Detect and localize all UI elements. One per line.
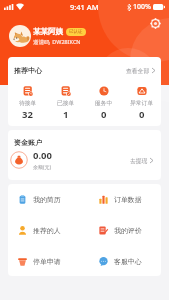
button[interactable]: 我的简历 xyxy=(8,184,84,215)
staticText: 去提现 xyxy=(130,157,148,164)
button[interactable]: 推荐的人 xyxy=(8,215,84,246)
staticText: 停单申请 xyxy=(33,257,61,266)
staticText: 已接单 xyxy=(57,99,75,106)
button[interactable]: 查看全部 xyxy=(126,67,155,74)
staticText: 某某阿姨 xyxy=(33,27,63,36)
staticText: 已认证 xyxy=(69,29,83,35)
staticText: 客服中心 xyxy=(114,257,142,266)
staticText: 推荐的人 xyxy=(33,226,61,235)
button[interactable]: 停单申请 xyxy=(8,246,84,276)
staticText: 异常订单 xyxy=(130,99,154,106)
staticText: 邀请码 DW28IKCN xyxy=(33,38,81,46)
staticText: 查看全部 xyxy=(126,67,150,74)
staticText: 我的简历 xyxy=(33,195,61,204)
button[interactable]: 客服中心 xyxy=(84,246,161,276)
staticText: 0 xyxy=(101,108,107,121)
staticText: 资金账户 xyxy=(14,138,42,147)
staticText: 9:41 AM xyxy=(70,2,99,12)
button[interactable]: 服务中 xyxy=(85,86,123,121)
staticText: 0.00 xyxy=(33,149,52,162)
button[interactable]: 异常订单 xyxy=(123,86,161,121)
staticText: 订单数据 xyxy=(114,195,142,204)
staticText: 32 xyxy=(22,108,33,121)
button[interactable]: 我的评价 xyxy=(84,215,161,246)
staticText: 待接单 xyxy=(19,99,37,106)
staticText: 余额(元) xyxy=(33,164,52,171)
staticText: 0 xyxy=(139,108,145,121)
staticText: 我的评价 xyxy=(114,226,142,235)
staticText: 1 xyxy=(63,108,69,121)
button[interactable]: Settings xyxy=(148,16,162,30)
button[interactable]: 已接单 xyxy=(47,86,85,121)
button[interactable]: 订单数据 xyxy=(84,184,161,215)
button[interactable]: 待接单 xyxy=(8,86,47,121)
staticText: 服务中 xyxy=(95,99,113,106)
staticText: 100% xyxy=(133,2,151,12)
staticText: 推荐中心 xyxy=(14,66,42,75)
button[interactable]: 去提现 xyxy=(130,157,153,164)
